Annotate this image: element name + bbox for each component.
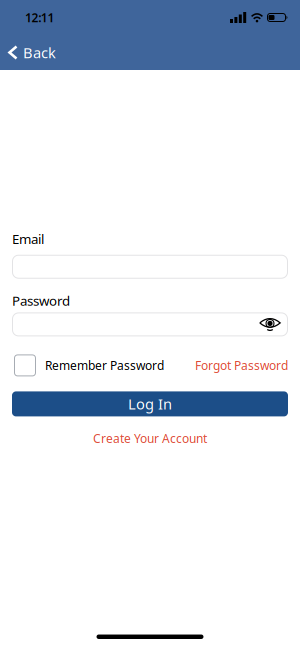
staticText: 12:11: [25, 9, 54, 25]
staticText: Remember Password: [45, 357, 164, 373]
button[interactable]: Back: [0, 43, 56, 62]
staticText: Back: [23, 43, 56, 62]
button[interactable]: Forgot Password: [195, 357, 288, 373]
button[interactable]: Remember Password: [14, 354, 164, 376]
button[interactable]: Show Password: [259, 317, 288, 332]
button[interactable]: Log In: [12, 391, 288, 416]
staticText: Create Your Account: [93, 430, 207, 446]
staticText: Email: [12, 230, 44, 248]
staticText: Log In: [128, 394, 172, 414]
staticText: Forgot Password: [195, 357, 288, 373]
button[interactable]: Create Your Account: [93, 430, 207, 446]
staticText: Password: [12, 292, 70, 309]
